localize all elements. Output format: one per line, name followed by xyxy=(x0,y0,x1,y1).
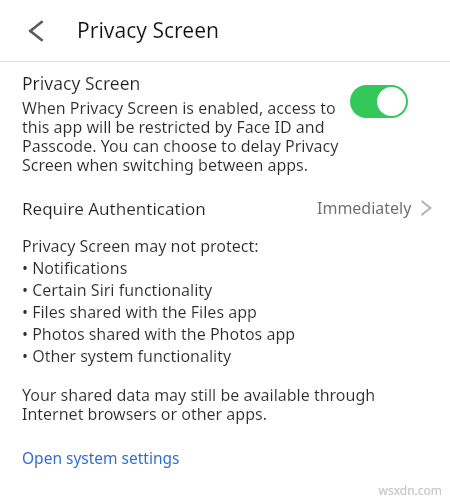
staticText: When Privacy Screen is enabled, access t… xyxy=(22,97,344,176)
staticText: Open system settings xyxy=(22,447,180,468)
button[interactable]: Privacy Screen toggle, on xyxy=(350,85,408,118)
staticText: Require Authentication xyxy=(22,197,206,220)
button[interactable]: Require Authentication xyxy=(0,190,450,226)
staticText: • Notifications xyxy=(22,257,128,279)
button[interactable]: Back xyxy=(16,11,56,51)
staticText: • Other system functionality xyxy=(22,345,232,367)
staticText: Your shared data may still be available … xyxy=(22,384,430,425)
staticText: • Photos shared with the Photos app xyxy=(22,323,296,345)
staticText: wsxdn.com xyxy=(378,482,442,498)
staticText: Privacy Screen xyxy=(77,16,220,45)
button[interactable]: Open system settings xyxy=(22,447,180,468)
staticText: • Files shared with the Files app xyxy=(22,301,257,323)
staticText: Immediately xyxy=(317,197,412,219)
staticText: • Certain Siri functionality xyxy=(22,279,213,301)
staticText: Privacy Screen xyxy=(22,71,141,95)
staticText: Privacy Screen may not protect: xyxy=(22,235,259,257)
